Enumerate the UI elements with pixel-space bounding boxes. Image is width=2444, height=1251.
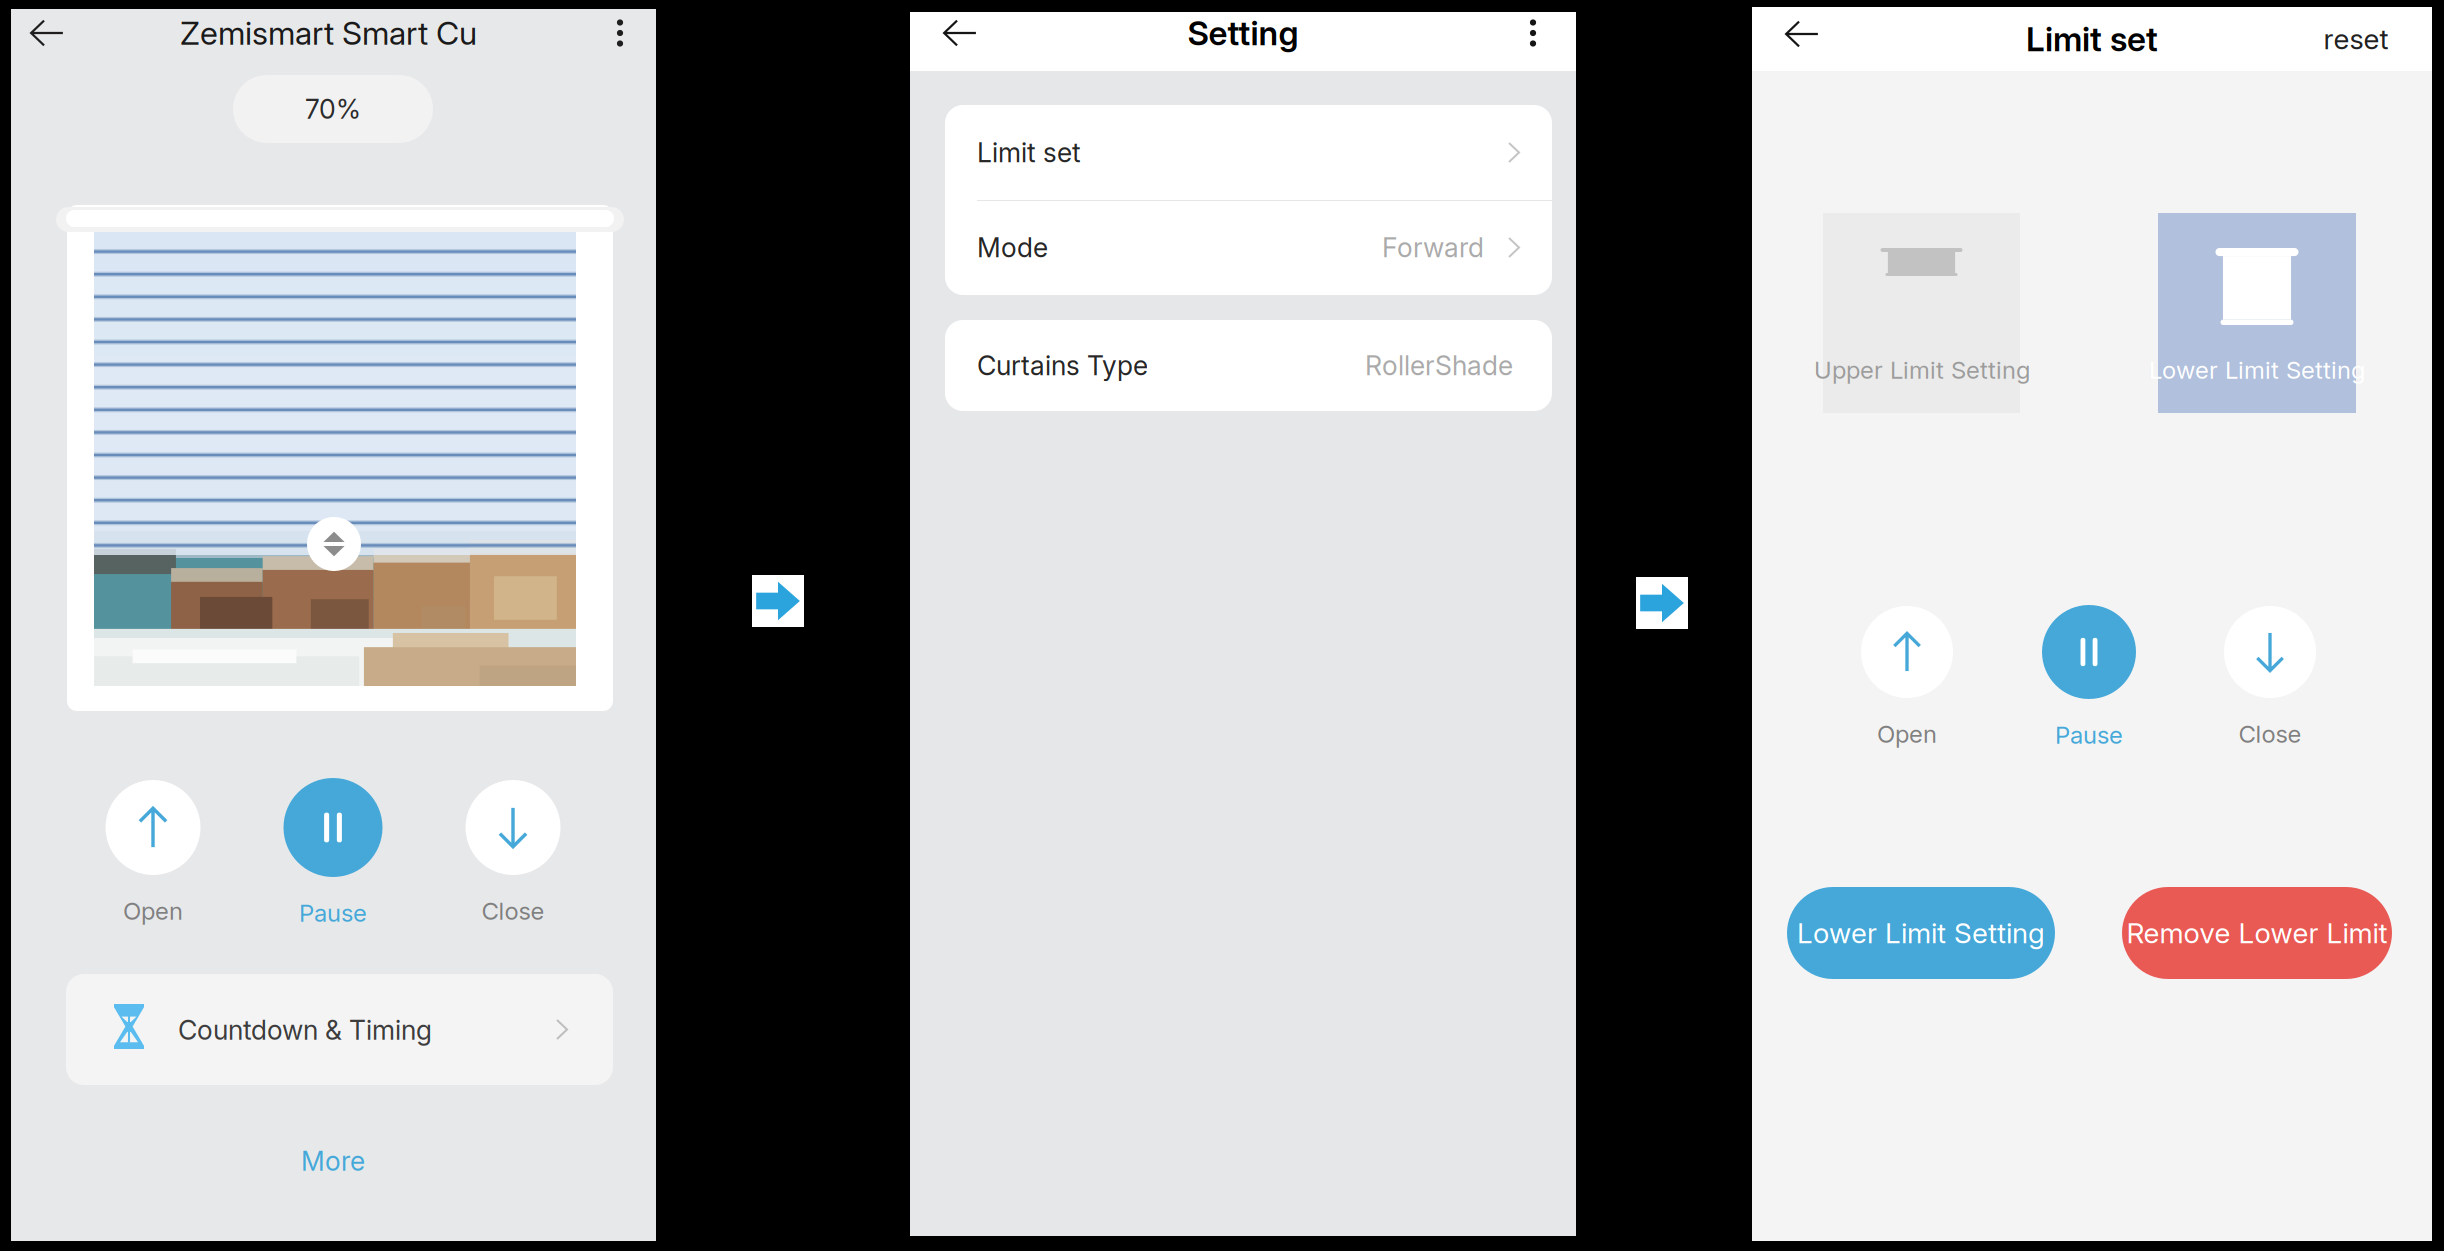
staticText: 70% [305, 93, 361, 125]
button[interactable]: Countdown & Timing [66, 974, 613, 1085]
button[interactable]: Close [2224, 606, 2316, 698]
staticText: Countdown & Timing [178, 1014, 432, 1046]
button[interactable]: Close [465, 780, 560, 875]
staticText: Mode [977, 231, 1048, 264]
staticText: Pause [299, 898, 367, 927]
button[interactable]: Open [105, 780, 200, 875]
button[interactable]: reset [2296, 7, 2416, 71]
staticText: Pause [2055, 720, 2123, 749]
staticText: Limit set [977, 136, 1081, 169]
staticText: Close [481, 896, 544, 925]
button[interactable]: Curtains Type [945, 320, 1552, 411]
button[interactable]: Pause [283, 778, 382, 877]
staticText: Upper Limit Setting [1814, 355, 2030, 384]
staticText: reset [2323, 22, 2388, 56]
staticText: Close [2238, 719, 2301, 748]
button[interactable]: Pause [2042, 605, 2136, 699]
staticText: More [301, 1145, 365, 1177]
button[interactable]: Back [922, 3, 998, 62]
button[interactable]: More [248, 1132, 418, 1190]
button[interactable]: Limit set [945, 105, 1552, 200]
button[interactable]: Back [9, 3, 85, 63]
staticText: Zemismart Smart Cu [180, 14, 477, 52]
button[interactable]: Remove Lower Limit [2122, 887, 2392, 979]
staticText: Lower Limit Setting [1797, 916, 2045, 950]
staticText: Limit set [2026, 19, 2158, 59]
staticText: Forward [1382, 231, 1484, 264]
staticText: Remove Lower Limit [2126, 916, 2387, 950]
staticText: Open [1877, 719, 1937, 748]
staticText: RollerShade [1365, 349, 1513, 382]
button[interactable]: Back [1764, 2, 1840, 66]
staticText: Curtains Type [977, 349, 1148, 382]
button[interactable]: Mode [945, 200, 1552, 295]
staticText: Setting [1187, 13, 1298, 53]
staticText: Lower Limit Setting [2149, 355, 2365, 384]
button[interactable]: Lower Limit Setting [2127, 213, 2387, 413]
button[interactable]: Lower Limit Setting [1787, 887, 2055, 979]
button[interactable]: Open [1861, 606, 1953, 698]
button[interactable]: More options [587, 3, 653, 63]
button[interactable]: More options [1500, 3, 1566, 62]
button[interactable]: Upper Limit Setting [1792, 213, 2052, 413]
staticText: Open [123, 896, 183, 925]
